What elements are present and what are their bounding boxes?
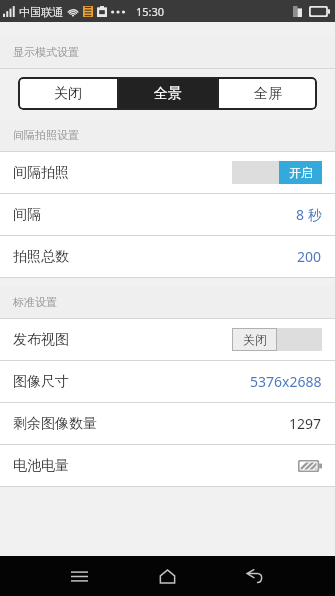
button[interactable]: 拍照总数 <box>0 236 335 277</box>
staticText: 电池电量 <box>13 457 69 475</box>
staticText: 8 秒 <box>296 205 322 224</box>
staticText: 图像尺寸 <box>13 373 69 391</box>
staticText: 间隔 <box>13 206 41 224</box>
staticText: 关闭 <box>54 85 82 103</box>
button[interactable]: Menu <box>36 556 123 596</box>
staticText: 关闭 <box>243 332 267 347</box>
staticText: 间隔拍照 <box>13 164 69 182</box>
staticText: 中国联通 <box>19 5 63 19</box>
staticText: 全屏 <box>254 85 282 103</box>
button[interactable]: 电池电量 <box>0 445 335 486</box>
staticText: 显示模式设置 <box>13 45 79 59</box>
staticText: 全景 <box>154 85 182 103</box>
button[interactable]: 发布视图 <box>0 319 335 360</box>
button[interactable]: 图像尺寸 <box>0 361 335 402</box>
button[interactable]: 间隔拍照 <box>0 152 335 193</box>
staticText: 开启 <box>289 165 313 180</box>
button[interactable]: 全屏 <box>219 77 317 110</box>
button[interactable]: 间隔 <box>0 194 335 235</box>
staticText: 15:30 <box>136 4 165 19</box>
staticText: 剩余图像数量 <box>13 415 97 433</box>
staticText: 标准设置 <box>13 295 57 309</box>
button[interactable]: 关闭 <box>232 328 322 351</box>
button[interactable]: 剩余图像数量 <box>0 403 335 444</box>
staticText: 拍照总数 <box>13 248 69 266</box>
staticText: 200 <box>297 247 322 266</box>
staticText: 间隔拍照设置 <box>13 128 79 142</box>
staticText: 发布视图 <box>13 331 69 349</box>
button[interactable]: Home <box>123 556 211 596</box>
button[interactable]: Back <box>211 556 299 596</box>
button[interactable]: 关闭 <box>18 77 117 110</box>
button[interactable]: 开启 <box>232 161 322 184</box>
staticText: 5376x2688 <box>250 372 322 391</box>
other: 电池电量 <box>298 460 322 472</box>
button[interactable]: 全景 <box>119 77 217 110</box>
staticText: 1297 <box>289 414 322 433</box>
